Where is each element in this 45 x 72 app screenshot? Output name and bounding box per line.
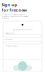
staticText: Password (5, 39, 13, 40)
staticText: Email address (5, 32, 15, 34)
staticText: Forgot password? (5, 45, 19, 47)
staticText: Create an account to keep all of your pr… (1, 14, 28, 19)
staticText: for free now (1, 7, 26, 13)
staticText: Welcome back to your space (12, 29, 32, 31)
staticText: Sign up (1, 2, 17, 7)
